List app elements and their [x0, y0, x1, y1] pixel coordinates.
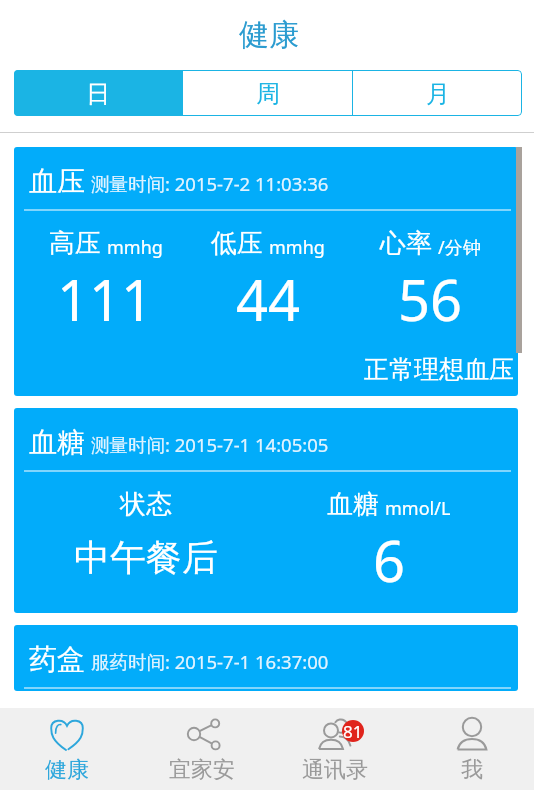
button[interactable]: 药盒: [14, 625, 518, 691]
staticText: 44: [236, 261, 301, 337]
staticText: 周: [256, 79, 280, 109]
button[interactable]: 血压: [14, 147, 518, 396]
staticText: mmhg: [107, 235, 163, 260]
staticText: 服药时间: 2015-7-1 16:37:00: [91, 649, 329, 674]
staticText: 健康: [239, 16, 299, 54]
button[interactable]: Share: [133, 708, 266, 790]
button[interactable]: Me: [400, 708, 534, 790]
staticText: 低压: [211, 227, 263, 260]
button[interactable]: 月: [353, 70, 522, 116]
staticText: 高压: [49, 227, 101, 260]
staticText: mmhg: [269, 235, 325, 260]
staticText: 我: [461, 756, 483, 784]
staticText: 药盒: [29, 642, 85, 677]
staticText: /分钟: [438, 235, 481, 260]
staticText: 6: [373, 522, 406, 598]
button[interactable]: 血糖: [14, 408, 518, 613]
staticText: 日: [86, 79, 110, 109]
staticText: 正常理想血压: [14, 354, 514, 385]
staticText: 血糖: [29, 425, 85, 460]
staticText: 血压: [29, 164, 85, 199]
staticText: 心率: [380, 227, 432, 260]
staticText: mmol/L: [385, 496, 451, 521]
staticText: 111: [57, 261, 154, 337]
button[interactable]: Contacts: [266, 708, 400, 790]
staticText: 健康: [45, 756, 89, 784]
button[interactable]: 周: [183, 70, 352, 116]
staticText: 中午餐后: [74, 535, 218, 580]
button[interactable]: 日: [14, 70, 182, 116]
staticText: 血糖: [327, 488, 379, 521]
button[interactable]: Health: [0, 708, 133, 790]
staticText: 通讯录: [302, 756, 368, 784]
staticText: 81: [343, 720, 363, 742]
staticText: 测量时间: 2015-7-1 14:05:05: [91, 432, 329, 457]
staticText: 测量时间: 2015-7-2 11:03:36: [91, 171, 329, 196]
staticText: 状态: [120, 488, 172, 521]
staticText: 56: [398, 261, 463, 337]
staticText: 宜家安: [169, 756, 235, 784]
staticText: 月: [426, 79, 450, 109]
